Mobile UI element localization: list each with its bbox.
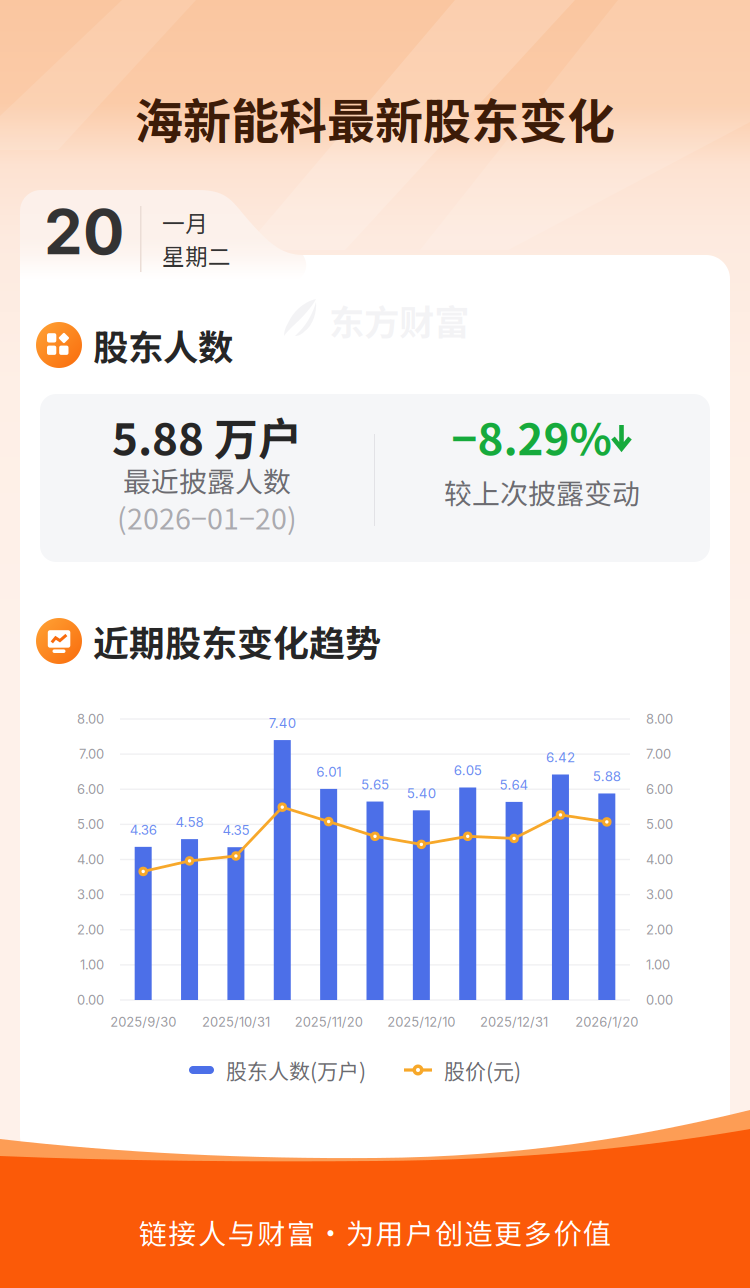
staticText: 2026/1/20 <box>575 1014 638 1030</box>
staticText: 近期股东变化趋势 <box>93 615 381 667</box>
staticText: 星期二 <box>162 239 231 271</box>
staticText: 0.00 <box>77 992 104 1008</box>
staticText: 8.00 <box>77 711 104 727</box>
staticText: 20 <box>44 195 124 269</box>
staticText: 5.00 <box>77 816 104 832</box>
staticText: 2025/11/20 <box>295 1014 363 1030</box>
staticText: 4.36 <box>130 822 157 838</box>
staticText: 5.88 <box>593 768 621 784</box>
staticText: 2025/10/31 <box>202 1014 270 1030</box>
staticText: −8.29% <box>451 404 611 468</box>
staticText: 5.65 <box>361 776 389 793</box>
staticText: 4.00 <box>646 852 673 867</box>
staticText: 1.00 <box>646 957 670 973</box>
staticText: 4.35 <box>222 822 249 838</box>
staticText: 股东人数 <box>93 319 233 371</box>
staticText: 链接人与财富·为用户创造更多价值 <box>139 1212 611 1252</box>
staticText: 2025/12/31 <box>480 1014 548 1030</box>
staticText: 3.00 <box>646 887 673 902</box>
staticText: 2025/9/30 <box>110 1014 176 1030</box>
staticText: 5.00 <box>646 816 673 832</box>
staticText: 2025/12/10 <box>387 1014 455 1030</box>
staticText: 7.00 <box>79 746 104 762</box>
staticText: 一月 <box>162 206 208 238</box>
staticText: 2.00 <box>646 922 673 938</box>
staticText: 5.40 <box>407 785 436 801</box>
staticText: 5.64 <box>500 777 529 793</box>
staticText: 0.00 <box>646 992 673 1008</box>
staticText: 股东人数(万户) <box>226 1055 366 1085</box>
staticText: 海新能科最新股东变化 <box>135 83 615 153</box>
staticText: (2026−01−20) <box>117 496 297 538</box>
staticText: 6.00 <box>646 781 673 797</box>
staticText: 5.88 万户 <box>112 404 302 468</box>
staticText: 6.00 <box>77 781 104 797</box>
staticText: 股价(元) <box>444 1055 521 1085</box>
staticText: 6.42 <box>546 749 575 765</box>
staticText: 7.00 <box>646 746 671 762</box>
staticText: 2.00 <box>77 922 104 938</box>
staticText: 7.40 <box>269 715 296 731</box>
staticText: 4.00 <box>77 852 104 867</box>
staticText: 最近披露人数 <box>123 460 291 500</box>
staticText: 4.58 <box>175 814 203 830</box>
staticText: 较上次披露变动 <box>444 472 640 512</box>
staticText: 3.00 <box>77 887 104 902</box>
staticText: 东方财富 <box>329 294 469 346</box>
staticText: 6.01 <box>316 764 341 780</box>
staticText: 8.00 <box>646 711 673 727</box>
staticText: 6.05 <box>454 762 482 778</box>
staticText: 1.00 <box>80 957 104 973</box>
